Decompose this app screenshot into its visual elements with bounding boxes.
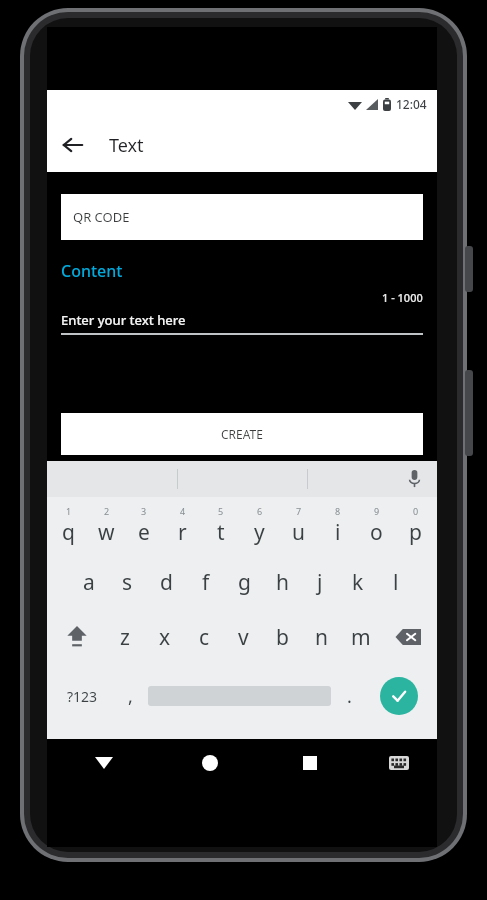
staticText: . [347,684,352,709]
staticText: u [292,518,305,547]
button[interactable]: Enter your text here [61,307,423,333]
staticText: h [276,568,289,597]
staticText: ?123 [67,687,98,706]
button[interactable]: CREATE [61,413,423,455]
button[interactable]: 3 [125,497,163,555]
staticText: d [160,568,173,597]
staticText: l [393,568,399,597]
staticText: j [317,568,323,597]
button[interactable]: j [301,555,339,609]
staticText: 5 [218,505,224,517]
button[interactable]: 8 [318,497,357,555]
button[interactable]: 1 [49,497,87,555]
staticText: k [352,568,364,597]
staticText: f [202,568,210,597]
button[interactable]: Back [47,119,99,171]
button[interactable]: n [302,609,341,665]
staticText: c [199,623,210,652]
button[interactable]: , [112,665,148,727]
staticText: Text [109,133,144,158]
button[interactable]: 4 [163,497,201,555]
button[interactable]: Shift [49,609,105,665]
staticText: n [315,623,328,652]
staticText: y [254,518,265,547]
button[interactable]: k [339,555,377,609]
button[interactable]: x [145,609,185,665]
button[interactable]: h [263,555,301,609]
button[interactable]: Hide keyboard [47,739,160,787]
staticText: , [128,684,133,709]
button[interactable]: v [224,609,263,665]
staticText: o [370,518,383,547]
button[interactable]: d [147,555,186,609]
staticText: i [335,518,341,547]
staticText: a [83,568,95,597]
staticText: 9 [374,505,380,517]
button[interactable]: Backspace [380,609,435,665]
staticText: CREATE [221,426,263,442]
staticText: 3 [141,505,147,517]
button[interactable]: 0 [396,497,435,555]
button[interactable]: ?123 [53,665,112,727]
button[interactable]: 2 [87,497,125,555]
staticText: p [409,518,422,547]
button[interactable]: m [341,609,380,665]
button[interactable]: QR CODE [61,194,423,240]
staticText: Enter your text here [61,311,186,329]
button[interactable]: Recents [260,739,360,787]
staticText: 1 - 1000 [382,290,423,305]
button[interactable]: Switch keyboard [360,739,437,787]
staticText: x [159,623,171,652]
staticText: 6 [257,505,263,517]
button[interactable]: 7 [279,497,318,555]
button[interactable]: l [377,555,415,609]
staticText: m [351,623,371,652]
button[interactable]: Enter [367,665,431,727]
button[interactable]: f [186,555,225,609]
staticText: 1 [66,505,72,517]
button[interactable]: g [225,555,263,609]
button[interactable]: 6 [240,497,279,555]
button[interactable]: a [69,555,108,609]
staticText: 8 [335,505,341,517]
staticText: z [120,623,130,652]
button[interactable]: s [108,555,147,609]
button[interactable]: 5 [201,497,240,555]
button[interactable]: z [105,609,145,665]
button[interactable]: b [263,609,302,665]
staticText: QR CODE [73,208,130,226]
staticText: s [122,568,133,597]
button[interactable]: c [185,609,224,665]
staticText: r [178,518,187,547]
button[interactable]: Space [148,683,331,709]
staticText: 4 [180,505,186,517]
staticText: 2 [104,505,110,517]
button[interactable]: Voice input [308,461,437,497]
staticText: t [217,518,225,547]
staticText: g [238,568,251,597]
staticText: w [98,518,115,547]
staticText: 0 [413,505,419,517]
staticText: Content [61,260,123,282]
button[interactable]: Home [160,739,260,787]
staticText: q [62,518,75,547]
button[interactable]: . [331,665,367,727]
staticText: b [276,623,289,652]
staticText: 12:04 [396,96,427,112]
button[interactable]: 9 [357,497,396,555]
staticText: v [238,623,249,652]
staticText: e [138,518,150,547]
staticText: 7 [296,505,302,517]
